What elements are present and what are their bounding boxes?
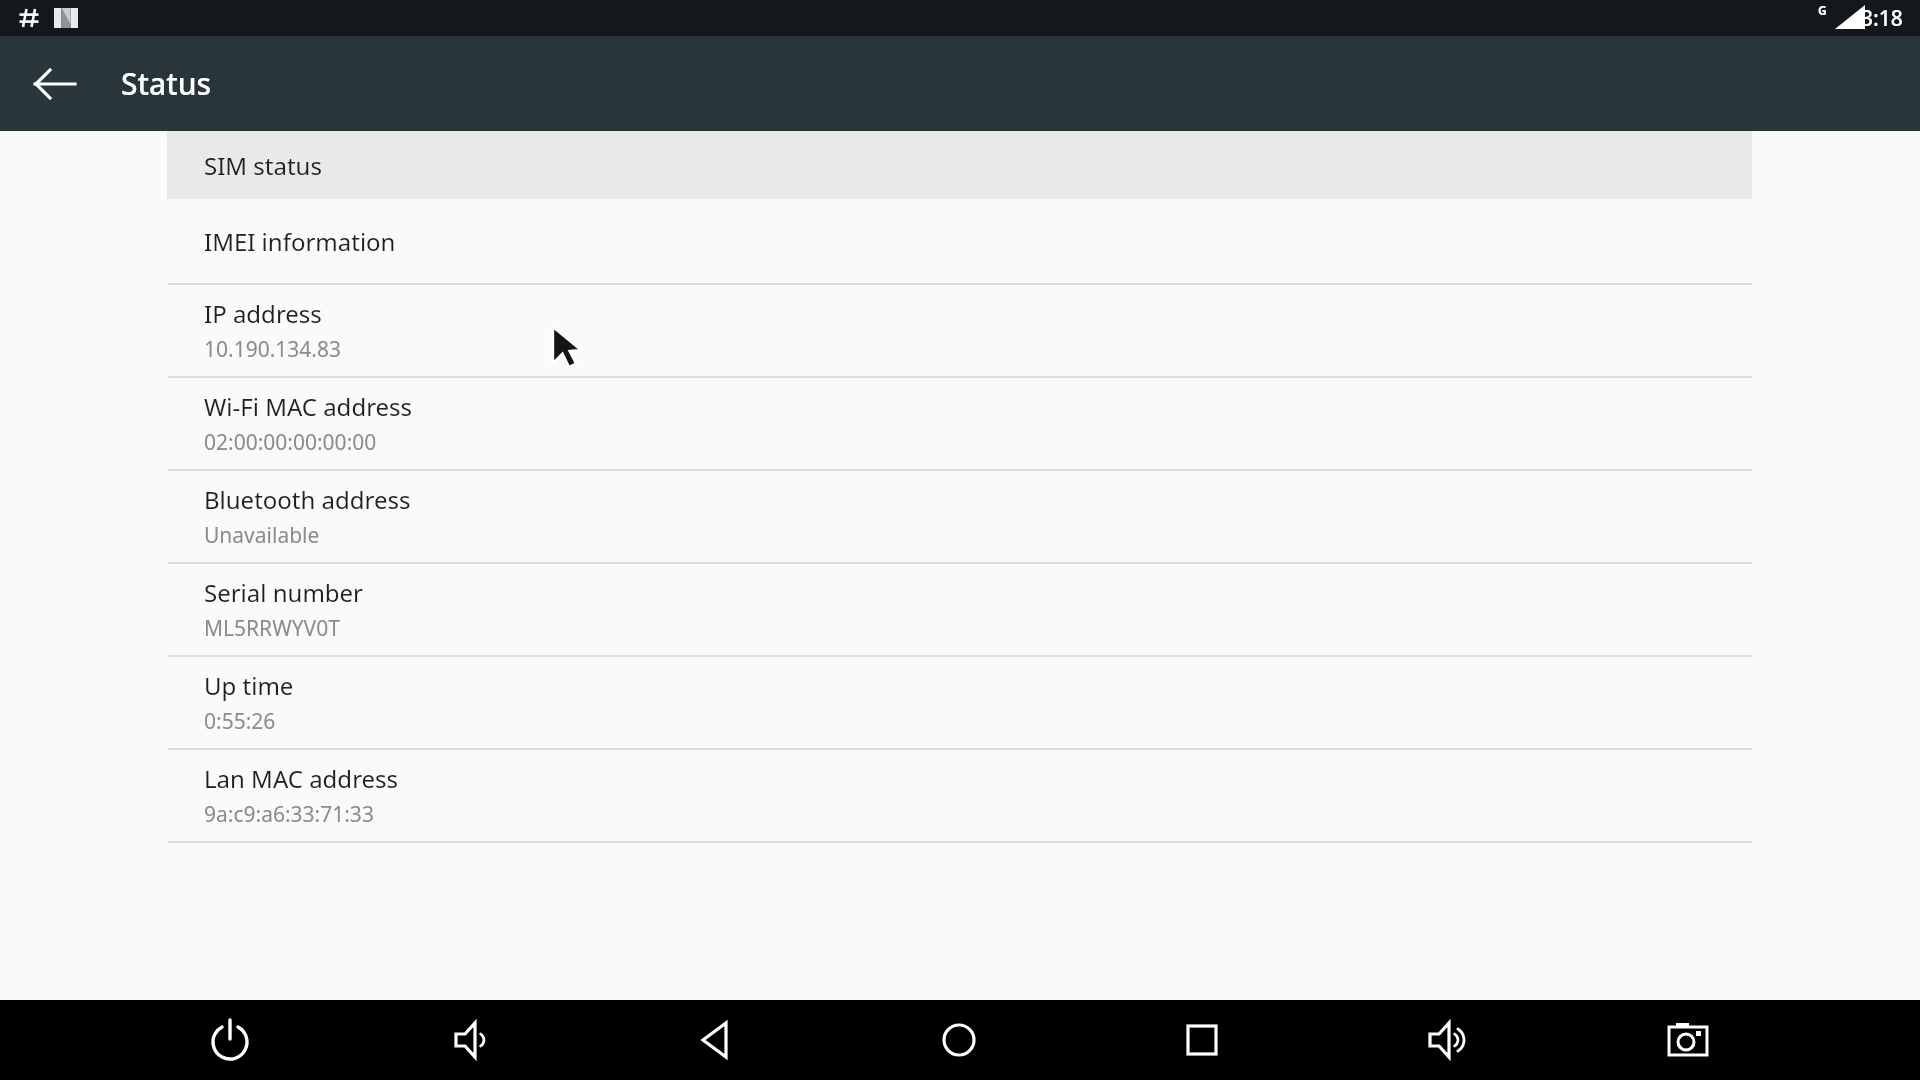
button[interactable]: Wi-Fi MAC address [167, 378, 1752, 469]
staticText: Serial number [204, 576, 364, 609]
button[interactable]: Screenshot [1648, 1000, 1728, 1080]
button[interactable]: Back [677, 1000, 757, 1080]
staticText: 3:18 [1861, 4, 1903, 33]
button[interactable]: Volume down [432, 1000, 512, 1080]
button[interactable]: IP address [167, 285, 1752, 376]
staticText: Bluetooth address [204, 483, 411, 516]
button[interactable]: Recents [1162, 1000, 1242, 1080]
button[interactable]: Power [190, 1000, 270, 1080]
staticText: Lan MAC address [204, 762, 399, 795]
staticText: G [1818, 2, 1827, 18]
button[interactable]: Back [23, 52, 87, 116]
staticText: ML5RRWYV0T [204, 614, 340, 643]
staticText: 0:55:26 [204, 707, 276, 736]
staticText: 02:00:00:00:00:00 [204, 428, 377, 457]
button[interactable]: Up time [167, 657, 1752, 748]
staticText: 10.190.134.83 [204, 335, 342, 364]
staticText: SIM status [204, 149, 322, 182]
staticText: IP address [204, 297, 322, 330]
staticText: Up time [204, 669, 294, 702]
button[interactable]: SIM status [167, 131, 1752, 199]
staticText: IMEI information [204, 225, 396, 258]
staticText: Wi-Fi MAC address [204, 390, 413, 423]
button[interactable]: Bluetooth address [167, 471, 1752, 562]
staticText: Status [121, 63, 212, 104]
staticText: Unavailable [204, 521, 320, 550]
button[interactable]: Volume up [1406, 1000, 1486, 1080]
button[interactable]: Lan MAC address [167, 750, 1752, 841]
button[interactable]: IMEI information [167, 199, 1752, 283]
button[interactable]: Serial number [167, 564, 1752, 655]
staticText: 9a:c9:a6:33:71:33 [204, 800, 374, 829]
button[interactable]: Home [919, 1000, 999, 1080]
